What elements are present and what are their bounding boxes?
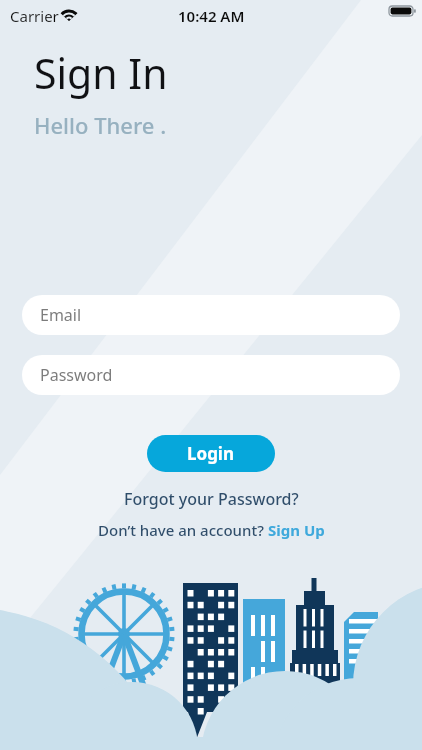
button[interactable]: Password (22, 355, 400, 395)
button[interactable]: Forgot your Password? (124, 488, 299, 510)
staticText: Hello There . (34, 110, 167, 140)
staticText: Don’t have an account? (98, 520, 268, 540)
staticText: Sign In (34, 45, 168, 101)
button[interactable]: Sign Up (268, 520, 325, 540)
staticText: Carrier (10, 6, 59, 26)
staticText: Email (40, 304, 82, 326)
staticText: 10:42 AM (178, 6, 245, 26)
staticText: Password (40, 364, 113, 386)
button[interactable]: Email (22, 295, 400, 335)
staticText: Login (187, 442, 235, 465)
button[interactable]: Login (147, 435, 275, 472)
